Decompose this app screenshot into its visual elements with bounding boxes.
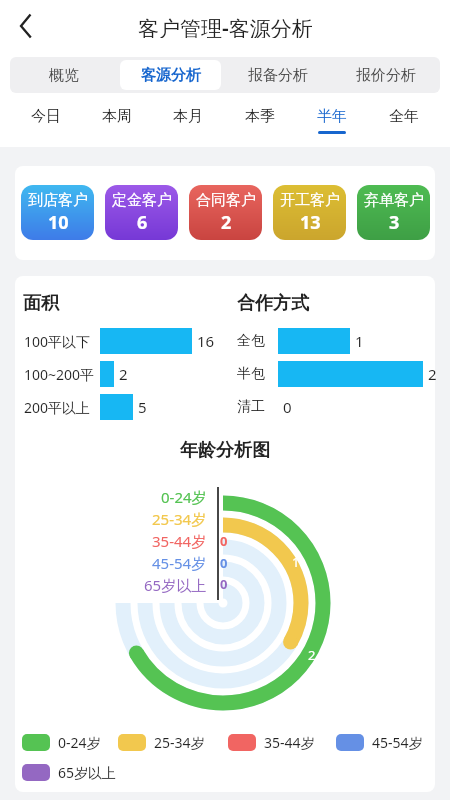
staticText: 45-54岁 — [152, 553, 207, 573]
staticText: 1 — [292, 553, 300, 571]
button[interactable]: 报价分析 — [332, 57, 440, 93]
staticText: 年龄分析图 — [180, 439, 270, 462]
button[interactable]: 开工客户 — [273, 185, 346, 240]
button[interactable]: 弃单客户 — [357, 185, 430, 240]
button[interactable]: 到店客户 — [21, 185, 94, 240]
button[interactable]: 全年 — [368, 93, 440, 147]
button[interactable] — [6, 8, 42, 44]
staticText: 65岁以上 — [58, 763, 117, 782]
staticText: 200平以上 — [24, 398, 91, 417]
staticText: 0-24岁 — [58, 733, 101, 752]
button[interactable]: 本周 — [81, 93, 152, 147]
staticText: 100~200平 — [24, 365, 95, 384]
button[interactable]: 定金客户 — [105, 185, 178, 240]
staticText: 0 — [220, 532, 228, 550]
staticText: 面积 — [23, 292, 59, 315]
button[interactable]: 概览 — [10, 57, 117, 93]
staticText: 全年 — [389, 107, 419, 126]
staticText: 本季 — [245, 107, 275, 126]
button[interactable]: 35-44岁 — [228, 732, 315, 752]
staticText: 5 — [138, 397, 147, 417]
button[interactable]: 报备分析 — [224, 57, 332, 93]
button[interactable]: 25-34岁 — [118, 732, 205, 752]
staticText: 10 — [48, 210, 69, 235]
staticText: 2 — [308, 646, 316, 664]
staticText: 45-54岁 — [372, 733, 423, 752]
staticText: 全包 — [237, 332, 265, 350]
button[interactable]: 客源分析 — [117, 57, 224, 93]
staticText: 报价分析 — [356, 66, 416, 85]
staticText: 100平以下 — [24, 332, 91, 351]
staticText: 弃单客户 — [364, 191, 424, 210]
staticText: 25-34岁 — [152, 509, 207, 529]
staticText: 开工客户 — [280, 191, 340, 210]
staticText: 本月 — [173, 107, 203, 126]
staticText: 2 — [119, 364, 128, 384]
staticText: 3 — [389, 210, 400, 235]
staticText: 1 — [355, 331, 364, 351]
staticText: 25-34岁 — [154, 733, 205, 752]
staticText: 35-44岁 — [264, 733, 315, 752]
staticText: 65岁以上 — [144, 575, 207, 595]
staticText: 16 — [197, 331, 215, 351]
staticText: 0 — [283, 397, 292, 417]
staticText: 半年 — [317, 107, 347, 126]
staticText: 2 — [428, 364, 437, 384]
staticText: 6 — [137, 210, 148, 235]
staticText: 今日 — [31, 107, 61, 126]
staticText: 0 — [220, 554, 228, 572]
button[interactable]: 本季 — [224, 93, 296, 147]
staticText: 0-24岁 — [161, 487, 207, 507]
staticText: 报备分析 — [248, 66, 308, 85]
button[interactable]: 本月 — [152, 93, 224, 147]
staticText: 0 — [220, 575, 228, 593]
staticText: 定金客户 — [112, 191, 172, 210]
staticText: 客源分析 — [141, 66, 201, 85]
staticText: 清工 — [237, 398, 265, 416]
button[interactable]: 今日 — [10, 93, 81, 147]
staticText: 2 — [221, 210, 232, 235]
staticText: 35-44岁 — [152, 531, 207, 551]
button[interactable]: 半年 — [296, 93, 368, 147]
button[interactable]: 65岁以上 — [22, 762, 117, 782]
staticText: 合作方式 — [237, 292, 309, 315]
staticText: 合同客户 — [196, 191, 256, 210]
button[interactable]: 合同客户 — [189, 185, 262, 240]
staticText: 本周 — [102, 107, 132, 126]
staticText: 到店客户 — [28, 191, 88, 210]
button[interactable]: 0-24岁 — [22, 732, 101, 752]
staticText: 半包 — [237, 365, 265, 383]
button[interactable]: 45-54岁 — [336, 732, 423, 752]
staticText: 13 — [300, 210, 321, 235]
staticText: 客户管理-客源分析 — [138, 14, 313, 38]
staticText: 概览 — [49, 66, 79, 85]
